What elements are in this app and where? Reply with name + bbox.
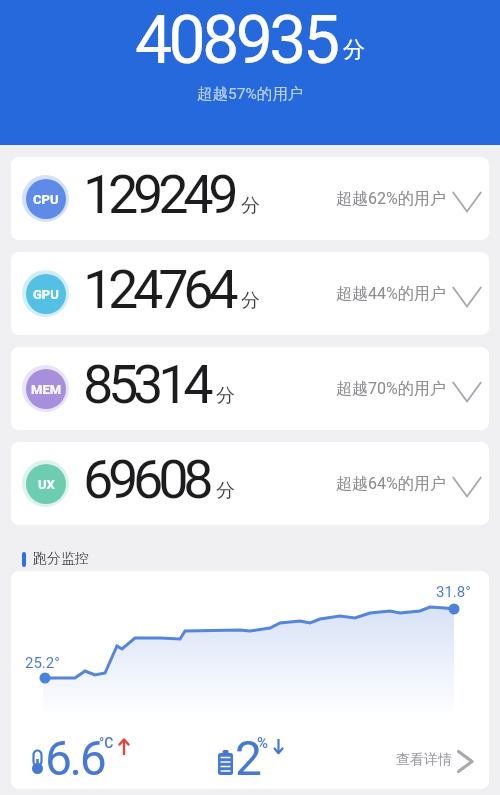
staticText: 分: [241, 194, 260, 218]
staticText: 分: [343, 36, 365, 64]
staticText: 超越57%的用户: [197, 84, 304, 104]
staticText: 6.6: [45, 730, 105, 786]
staticText: 129249: [83, 163, 234, 226]
staticText: 分: [216, 479, 235, 503]
staticText: 85314: [83, 353, 209, 416]
staticText: °C: [99, 735, 114, 751]
staticText: %: [257, 734, 269, 752]
staticText: CPU: [33, 192, 59, 207]
staticText: 408935: [135, 2, 337, 79]
button[interactable]: 25.2°: [11, 571, 489, 789]
button[interactable]: CPU: [11, 157, 489, 240]
button[interactable]: MEM: [11, 347, 489, 430]
staticText: 分: [216, 384, 235, 408]
button[interactable]: GPU: [11, 252, 489, 335]
staticText: MEM: [31, 382, 62, 397]
staticText: 69608: [83, 448, 209, 511]
staticText: 超越62%的用户: [336, 189, 446, 209]
staticText: 超越44%的用户: [336, 284, 446, 304]
staticText: 25.2°: [25, 654, 60, 672]
staticText: 分: [241, 289, 260, 313]
staticText: 超越70%的用户: [336, 379, 446, 399]
staticText: 124764: [83, 258, 234, 321]
staticText: 31.8°: [436, 583, 471, 601]
staticText: 超越64%的用户: [336, 474, 446, 494]
staticText: 跑分监控: [33, 550, 89, 568]
staticText: UX: [38, 477, 55, 492]
staticText: 查看详情: [396, 751, 452, 769]
staticText: GPU: [33, 287, 59, 302]
staticText: 2: [235, 730, 262, 786]
button[interactable]: UX: [11, 442, 489, 525]
